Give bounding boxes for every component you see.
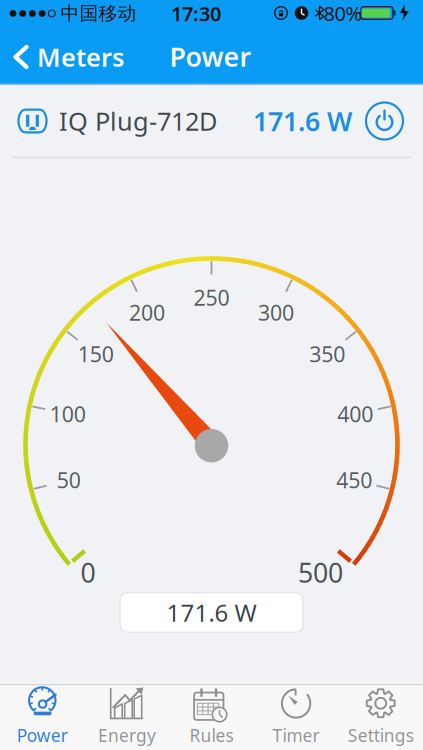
staticText: 171.6 W — [166, 597, 256, 628]
staticText: 80% — [323, 0, 362, 27]
staticText: 50 — [57, 466, 81, 494]
staticText: 350 — [309, 340, 345, 368]
staticText: 500 — [298, 555, 343, 590]
staticText: 400 — [337, 400, 373, 428]
button[interactable]: Back — [13, 35, 143, 79]
button[interactable]: Timer — [254, 684, 338, 748]
staticText: Rules — [189, 724, 233, 747]
button[interactable]: Energy — [85, 684, 169, 748]
staticText: 100 — [50, 400, 86, 428]
button[interactable]: Rules — [169, 684, 254, 748]
staticText: 450 — [336, 466, 372, 494]
staticText: IQ Plug-712D — [59, 104, 217, 138]
button[interactable]: Power — [0, 684, 85, 748]
staticText: Timer — [273, 724, 320, 747]
staticText: Power — [169, 39, 251, 74]
staticText: Meters — [37, 40, 124, 74]
staticText: 171.6 W — [253, 103, 352, 139]
staticText: 200 — [129, 298, 165, 326]
staticText: Settings — [348, 724, 414, 747]
staticText: 300 — [258, 298, 294, 326]
staticText: 250 — [193, 283, 229, 312]
button[interactable]: Settings — [338, 684, 423, 748]
staticText: 150 — [78, 340, 114, 368]
staticText: 0 — [80, 555, 95, 590]
staticText: 17:30 — [171, 0, 221, 27]
staticText: Energy — [98, 724, 156, 747]
staticText: 中国移动 — [60, 2, 136, 25]
staticText: Power — [17, 724, 68, 747]
button[interactable]: Power on/off — [366, 102, 403, 139]
